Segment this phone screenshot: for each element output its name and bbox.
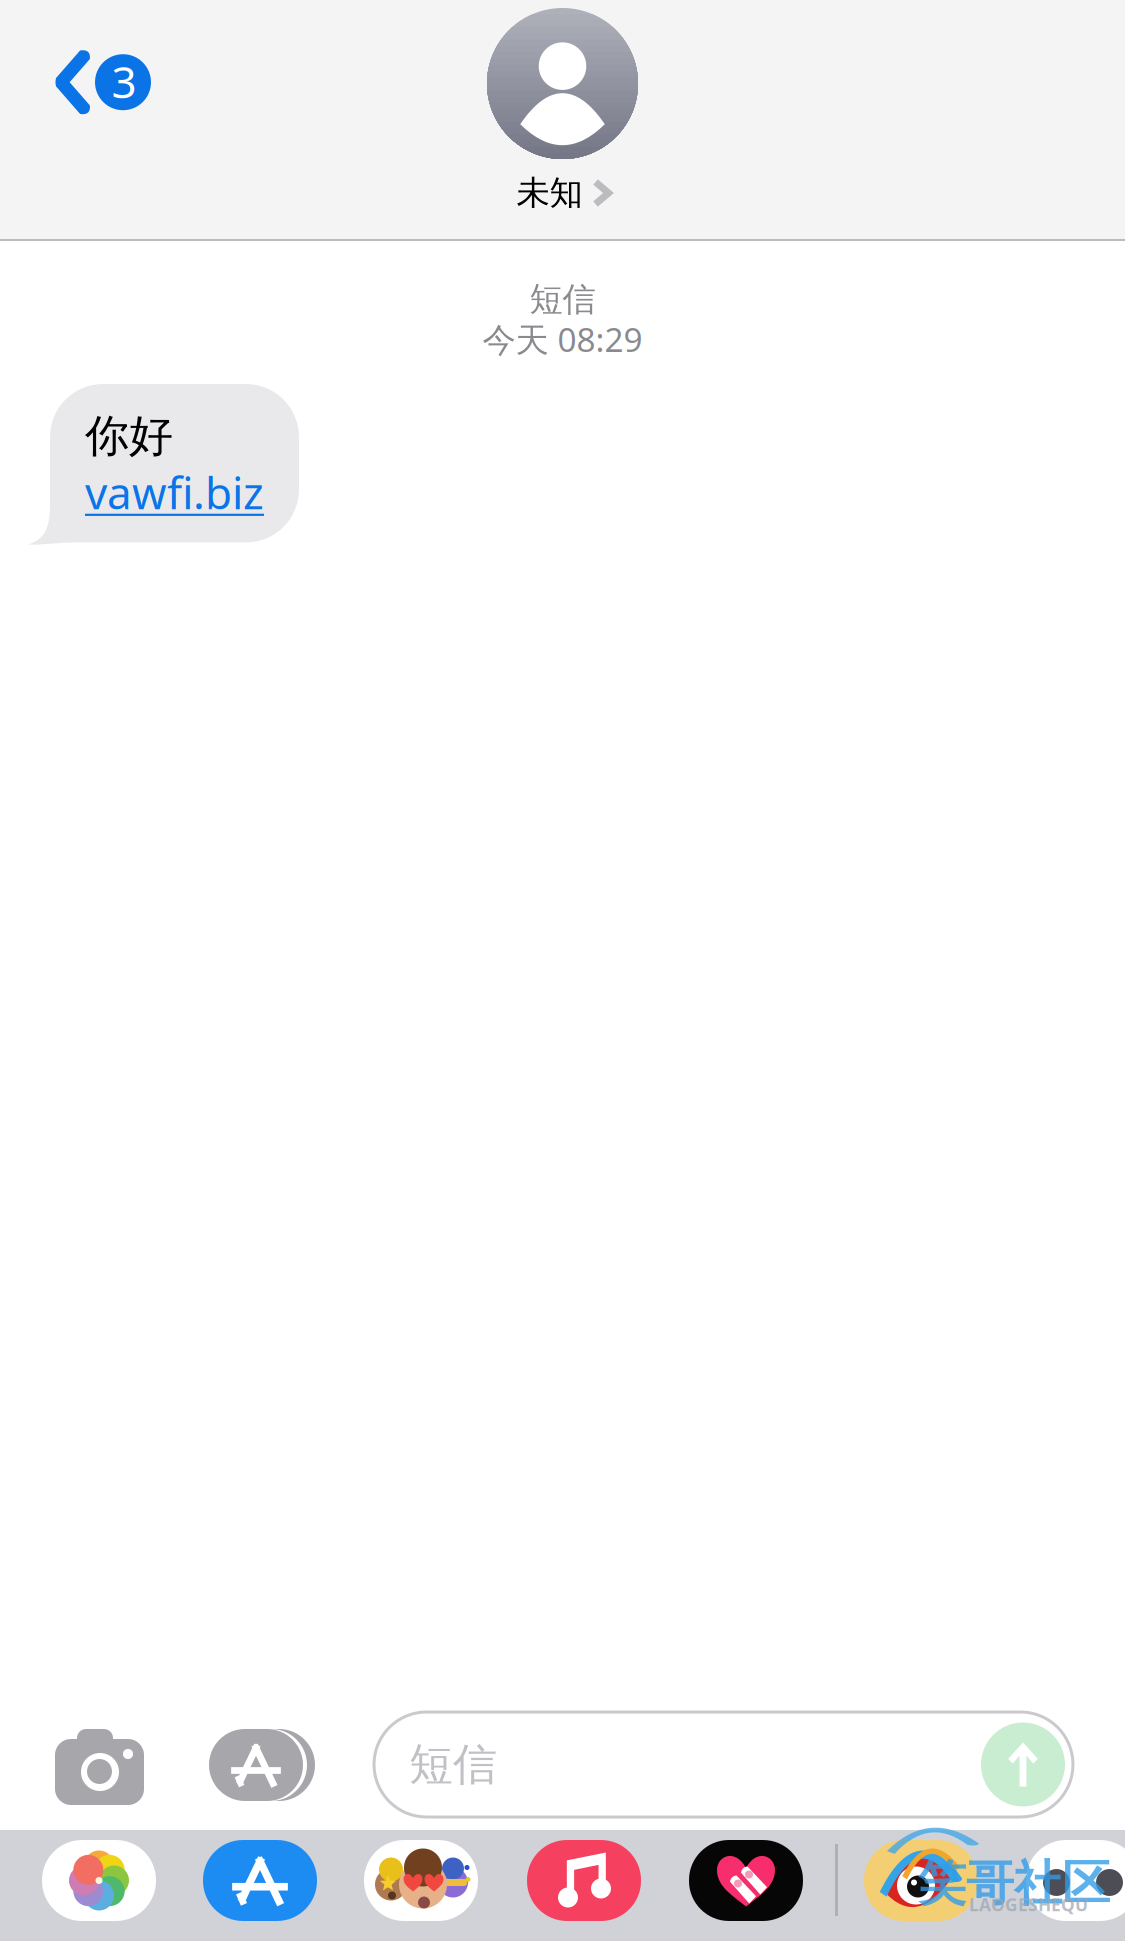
button[interactable]: Message field: [374, 1712, 1073, 1817]
staticText: LAOGESHEQU: [969, 1893, 1088, 1916]
staticText: 你好: [85, 409, 173, 463]
staticText: 短信: [529, 279, 595, 320]
button[interactable]: App Store: [188, 1715, 324, 1815]
button[interactable]: Camera: [41, 1701, 158, 1811]
staticText: 笑哥社区: [918, 1854, 1110, 1913]
button[interactable]: Weibo: [864, 1840, 978, 1921]
button[interactable]: More apps: [1026, 1840, 1125, 1921]
button[interactable]: Memoji stickers: [364, 1840, 478, 1921]
staticText: vawfi.biz: [85, 463, 264, 521]
staticText: 3: [111, 52, 136, 110]
staticText: 今天 08:29: [482, 317, 642, 361]
button[interactable]: Back, 3 unread: [45, 29, 167, 135]
staticText: 短信: [409, 1737, 497, 1791]
button[interactable]: Music: [527, 1840, 641, 1921]
button[interactable]: Fitness: [689, 1840, 803, 1921]
staticText: 未知: [516, 172, 582, 213]
button[interactable]: Photos: [42, 1840, 156, 1921]
button[interactable]: 未知, contact details: [457, 3, 668, 213]
button[interactable]: App Store: [203, 1840, 317, 1921]
